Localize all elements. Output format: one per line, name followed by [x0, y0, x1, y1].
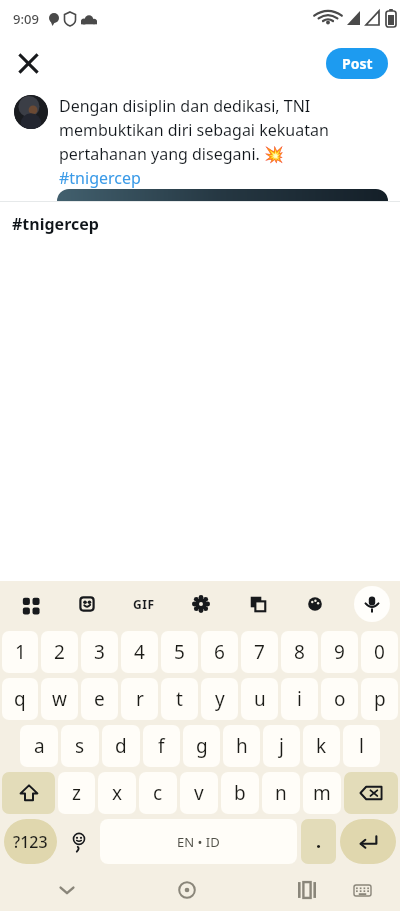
button[interactable]: w [41, 678, 78, 720]
staticText: 8 [294, 639, 305, 665]
staticText: . [316, 829, 322, 854]
button[interactable]: 8 [281, 631, 318, 673]
button[interactable]: z [58, 772, 95, 814]
button[interactable]: b [221, 772, 259, 814]
staticText: w [52, 686, 67, 712]
button[interactable]: 0 [361, 631, 398, 673]
button[interactable]: Close [8, 43, 48, 83]
button[interactable]: #tnigercep [0, 202, 400, 246]
button[interactable]: m [303, 772, 341, 814]
button[interactable]: 1 [2, 631, 38, 673]
button[interactable]: GIF [127, 587, 161, 621]
button[interactable]: p [361, 678, 398, 720]
button[interactable] [14, 95, 48, 129]
staticText: 1 [15, 639, 26, 665]
button[interactable]: 9 [321, 631, 358, 673]
staticText: y [215, 686, 225, 712]
button[interactable]: 7 [241, 631, 278, 673]
button[interactable]: s [61, 725, 99, 767]
staticText: a [34, 733, 45, 759]
button[interactable] [57, 189, 388, 201]
button[interactable]: k [303, 725, 340, 767]
button[interactable]: Apps [12, 587, 46, 621]
staticText: 7 [254, 639, 265, 665]
staticText: 9:09 [13, 10, 39, 28]
staticText: 3 [94, 639, 105, 665]
button[interactable]: e [81, 678, 118, 720]
button[interactable]: 6 [201, 631, 238, 673]
button[interactable]: o [321, 678, 358, 720]
staticText: s [75, 733, 85, 759]
staticText: Post [342, 54, 373, 73]
button[interactable]: d [102, 725, 140, 767]
staticText: f [158, 733, 165, 759]
button[interactable]: u [241, 678, 278, 720]
button[interactable]: . [301, 819, 336, 864]
staticText: p [374, 686, 386, 712]
button[interactable]: 5 [161, 631, 198, 673]
button[interactable]: Home [167, 870, 207, 910]
button[interactable]: t [161, 678, 198, 720]
staticText: o [334, 686, 346, 712]
staticText: 2 [54, 639, 65, 665]
button[interactable]: Theme [298, 587, 332, 621]
button[interactable]: l [343, 725, 380, 767]
staticText: 0 [374, 639, 385, 665]
staticText: k [316, 733, 327, 759]
staticText: q [14, 686, 26, 712]
button[interactable]: g [183, 725, 220, 767]
staticText: i [297, 686, 302, 712]
button[interactable]: i [281, 678, 318, 720]
staticText: GIF [133, 596, 155, 612]
button[interactable]: Shift [2, 772, 55, 814]
staticText: #tnigercep [12, 213, 99, 235]
button[interactable]: ?123 [4, 819, 57, 864]
staticText: z [72, 780, 81, 806]
button[interactable]: f [143, 725, 180, 767]
button[interactable]: Translate [241, 587, 275, 621]
staticText: c [153, 780, 163, 806]
staticText: v [194, 780, 204, 806]
staticText: 4 [134, 639, 145, 665]
button[interactable]: h [223, 725, 260, 767]
staticText: 5 [174, 639, 185, 665]
staticText: n [275, 780, 287, 806]
staticText: b [234, 780, 246, 806]
button[interactable]: Hide keyboard [47, 870, 87, 910]
button[interactable]: Recents [287, 870, 327, 910]
staticText: h [236, 733, 248, 759]
button[interactable]: Emoji [61, 819, 96, 864]
button[interactable]: Backspace [344, 772, 398, 814]
button[interactable]: Stickers [70, 587, 104, 621]
staticText: 6 [214, 639, 225, 665]
button[interactable]: Settings [184, 587, 218, 621]
staticText: ?123 [13, 831, 48, 853]
button[interactable]: n [262, 772, 300, 814]
staticText: t [176, 686, 183, 712]
button[interactable]: 4 [121, 631, 158, 673]
staticText: e [94, 686, 105, 712]
staticText: r [136, 686, 144, 712]
staticText: x [112, 780, 123, 806]
staticText: g [196, 733, 208, 759]
staticText: Dengan disiplin dan dedikasi, TNI membuk… [59, 95, 390, 189]
staticText: j [279, 733, 284, 759]
button[interactable]: c [139, 772, 177, 814]
button[interactable]: j [263, 725, 300, 767]
button[interactable]: r [121, 678, 158, 720]
button[interactable]: Enter [340, 819, 396, 864]
button[interactable]: v [180, 772, 218, 814]
button[interactable]: x [98, 772, 136, 814]
button[interactable]: EN • ID [100, 819, 297, 864]
button[interactable]: y [201, 678, 238, 720]
button[interactable]: 3 [81, 631, 118, 673]
button[interactable]: Switch keyboard [345, 873, 379, 907]
button[interactable]: a [20, 725, 58, 767]
staticText: EN • ID [177, 833, 220, 851]
button[interactable]: q [2, 678, 38, 720]
button[interactable]: Voice input [354, 586, 390, 622]
button[interactable]: 2 [41, 631, 78, 673]
staticText: u [254, 686, 266, 712]
button[interactable]: Post [326, 48, 388, 79]
staticText: d [115, 733, 127, 759]
